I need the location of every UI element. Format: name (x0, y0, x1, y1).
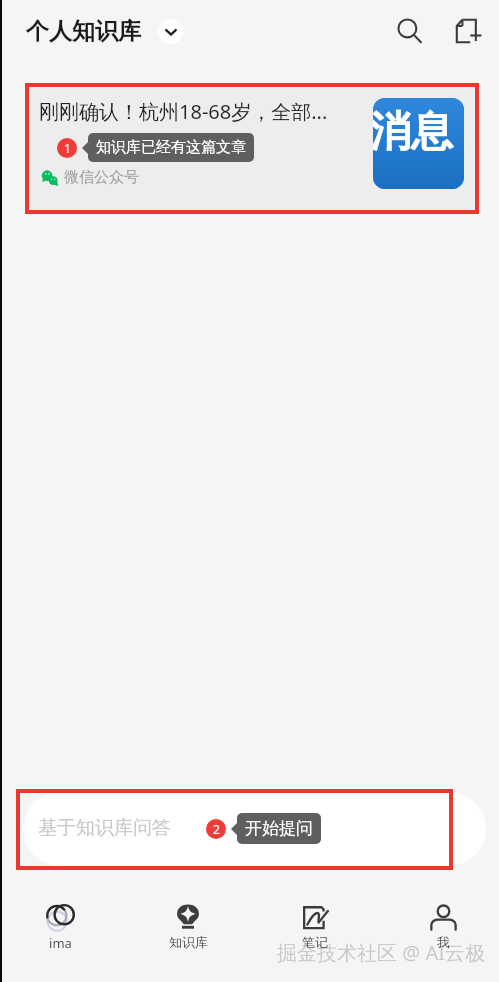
staticText: 知识库已经有这篇文章 (96, 138, 246, 157)
staticText: 知识库 (169, 934, 208, 950)
staticText: 2 (213, 821, 220, 837)
staticText: ima (49, 934, 72, 952)
staticText: 笔记 (302, 934, 328, 950)
staticText: 开始提问 (245, 818, 313, 839)
button[interactable] (23, 792, 486, 866)
button[interactable]: 我 (403, 900, 483, 956)
button[interactable]: 刚刚确认！杭州18-68岁，全部... (27, 85, 477, 213)
button[interactable]: Switch knowledge base (158, 19, 183, 44)
staticText: 基于知识库问答 (38, 816, 171, 840)
staticText: 我 (437, 934, 450, 950)
staticText: 微信公众号 (64, 168, 139, 187)
staticText: 刚刚确认！杭州18-68岁，全部... (39, 98, 359, 125)
staticText: 个人知识库 (26, 17, 141, 46)
button[interactable]: ima (20, 900, 100, 956)
button[interactable]: New note (448, 11, 488, 51)
button[interactable]: 知识库 (148, 900, 228, 956)
staticText: 1 (64, 140, 71, 156)
button[interactable]: Search (390, 11, 430, 51)
staticText: 发新消息 (373, 106, 464, 159)
staticText: 掘金技术社区 @ AI云极 (277, 939, 485, 966)
button[interactable]: 笔记 (275, 900, 355, 956)
